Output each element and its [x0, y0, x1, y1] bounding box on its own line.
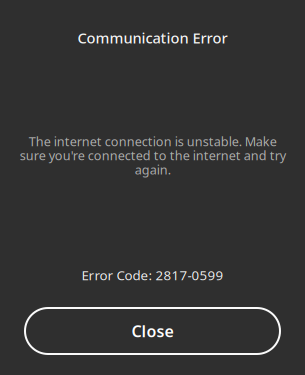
staticText: Communication Error: [77, 28, 227, 47]
staticText: Close: [131, 320, 173, 342]
staticText: Error Code: 2817-0599: [81, 266, 223, 284]
button[interactable]: Close: [25, 308, 280, 354]
staticText: The internet connection is unstable. Mak…: [19, 134, 285, 177]
